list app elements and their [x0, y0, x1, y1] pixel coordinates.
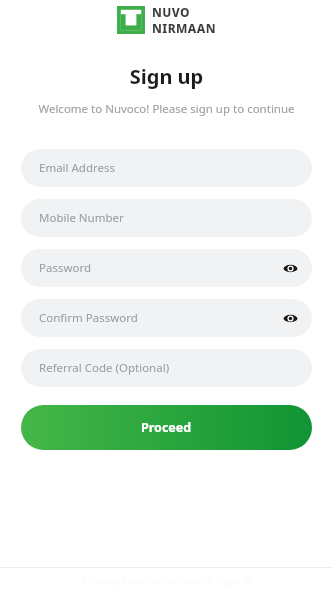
staticText: NUVO: [152, 4, 190, 20]
button[interactable]: Confirm Password: [21, 299, 312, 337]
staticText: Sign up: [0, 63, 333, 90]
button[interactable]: Mobile Number: [21, 199, 312, 237]
button[interactable]: Referral Code (Optional): [21, 349, 312, 387]
staticText: Welcome to Nuvoco! Please sign up to con…: [0, 101, 333, 117]
staticText: Referral Code (Optional): [39, 360, 170, 376]
button[interactable]: Proceed: [21, 405, 312, 450]
staticText: NIRMAAN: [152, 20, 216, 36]
staticText: Password: [39, 260, 92, 276]
staticText: Email Address: [39, 160, 116, 176]
button[interactable]: NUVO: [0, 4, 333, 36]
staticText: Confirm Password: [39, 310, 138, 326]
button[interactable]: Show password: [277, 255, 303, 281]
staticText: Proceed: [141, 419, 192, 436]
staticText: Mobile Number: [39, 210, 124, 226]
button[interactable]: Password: [21, 249, 312, 287]
button[interactable]: Email Address: [21, 149, 312, 187]
button[interactable]: Show password: [277, 305, 303, 331]
